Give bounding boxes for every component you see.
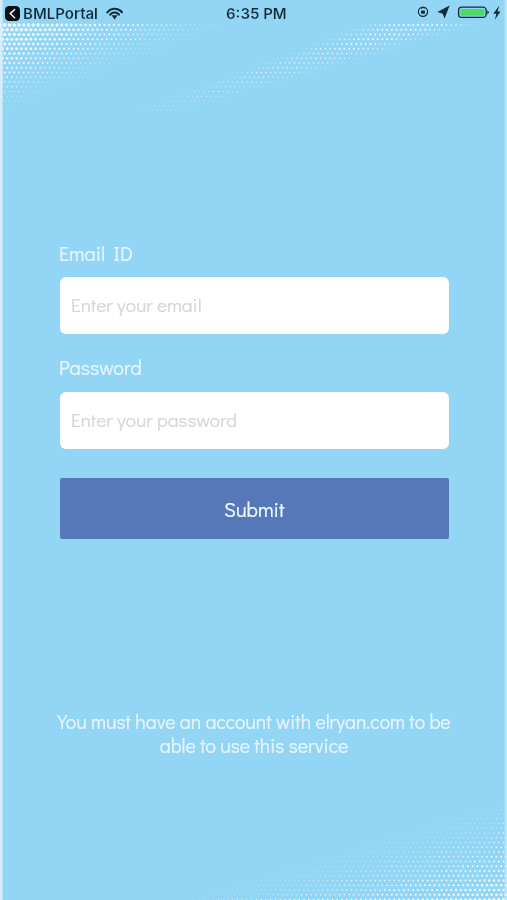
button[interactable]: Enter your email bbox=[60, 277, 449, 334]
staticText: Enter your email bbox=[71, 292, 202, 317]
button[interactable]: Enter your password bbox=[60, 392, 449, 449]
staticText: Password bbox=[59, 354, 142, 380]
staticText: Email ID bbox=[59, 240, 133, 266]
staticText: BMLPortal bbox=[23, 4, 99, 22]
staticText: You must have an account with elryan.com… bbox=[54, 709, 454, 771]
staticText: Enter your password bbox=[71, 407, 237, 432]
button[interactable]: Back to BMLPortal bbox=[0, 0, 100, 25]
staticText: 6:35 PM bbox=[226, 4, 287, 22]
staticText: Submit bbox=[224, 496, 285, 522]
button[interactable]: Submit bbox=[60, 478, 449, 539]
